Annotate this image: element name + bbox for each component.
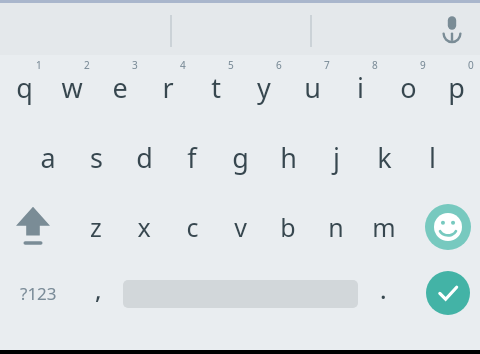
button[interactable]: g (216, 122, 264, 192)
button[interactable]: u (288, 52, 336, 122)
staticText: , (95, 273, 102, 306)
button[interactable]: Enter (415, 262, 480, 324)
button[interactable]: h (264, 122, 312, 192)
staticText: c (186, 210, 199, 244)
button[interactable]: p (432, 52, 480, 122)
staticText: 1 (36, 58, 42, 72)
staticText: h (280, 139, 297, 176)
staticText: n (328, 210, 344, 244)
button[interactable]: n (312, 192, 360, 262)
staticText: 3 (132, 58, 138, 72)
button[interactable]: c (168, 192, 216, 262)
staticText: x (137, 210, 151, 244)
button[interactable]: f (168, 122, 216, 192)
button[interactable]: q (0, 52, 48, 122)
button[interactable]: ?123 (0, 262, 77, 324)
button[interactable]: t (192, 52, 240, 122)
staticText: s (90, 139, 103, 176)
staticText: 5 (228, 58, 234, 72)
button[interactable]: Shift (0, 192, 65, 262)
staticText: d (136, 139, 153, 176)
button[interactable]: l (408, 122, 456, 192)
staticText: t (211, 69, 221, 106)
staticText: l (429, 139, 436, 176)
staticText: r (162, 69, 174, 106)
staticText: 9 (420, 58, 426, 72)
staticText: g (232, 139, 249, 176)
staticText: o (400, 69, 417, 106)
staticText: f (187, 139, 197, 176)
staticText: j (333, 139, 340, 176)
button[interactable]: y (240, 52, 288, 122)
button[interactable]: e (96, 52, 144, 122)
button[interactable]: m (360, 192, 408, 262)
button[interactable]: k (360, 122, 408, 192)
staticText: y (257, 69, 271, 106)
staticText: 0 (468, 58, 474, 72)
staticText: 6 (276, 58, 282, 72)
staticText: ?123 (20, 282, 57, 305)
staticText: u (304, 69, 321, 106)
button[interactable]: s (72, 122, 120, 192)
button[interactable]: w (48, 52, 96, 122)
button[interactable]: j (312, 122, 360, 192)
staticText: q (16, 69, 33, 106)
staticText: m (372, 210, 396, 244)
staticText: v (234, 210, 247, 244)
staticText: e (112, 69, 128, 106)
staticText: 4 (180, 58, 186, 72)
button[interactable]: x (120, 192, 168, 262)
staticText: . (380, 273, 387, 306)
button[interactable]: Voice input (428, 3, 476, 52)
button[interactable]: d (120, 122, 168, 192)
button[interactable]: , (77, 262, 120, 324)
staticText: z (90, 210, 102, 244)
button[interactable]: i (336, 52, 384, 122)
button[interactable]: . (362, 262, 404, 324)
staticText: 2 (84, 58, 90, 72)
button[interactable]: z (72, 192, 120, 262)
staticText: 7 (324, 58, 330, 72)
button[interactable]: v (216, 192, 264, 262)
staticText: p (448, 69, 465, 106)
staticText: a (40, 139, 56, 176)
staticText: w (61, 69, 83, 106)
button[interactable]: Emoji (415, 192, 480, 262)
button[interactable]: o (384, 52, 432, 122)
button[interactable]: r (144, 52, 192, 122)
button[interactable]: a (24, 122, 72, 192)
staticText: b (280, 210, 296, 244)
staticText: i (357, 69, 364, 106)
button[interactable]: b (264, 192, 312, 262)
staticText: k (377, 139, 392, 176)
staticText: 8 (372, 58, 378, 72)
